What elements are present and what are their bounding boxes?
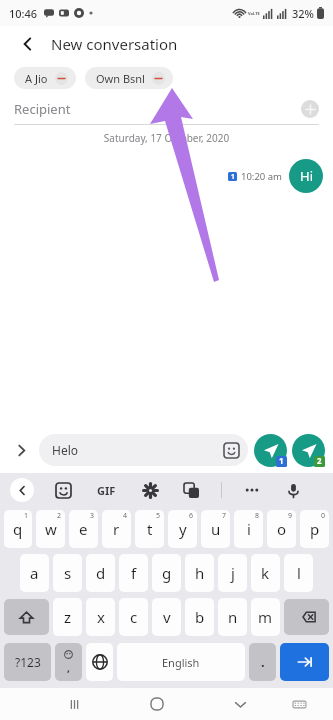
button[interactable]: More options <box>241 479 263 501</box>
staticText: . <box>261 653 265 671</box>
staticText: Recipient <box>14 100 301 118</box>
button[interactable]: Send with SIM 1 <box>254 434 287 467</box>
button[interactable]: h <box>185 554 214 592</box>
button[interactable]: Home <box>142 689 172 719</box>
staticText: j <box>231 563 235 583</box>
button[interactable]: e <box>69 510 98 548</box>
button[interactable]: s <box>53 554 82 592</box>
staticText: z <box>64 607 72 627</box>
button[interactable]: Translate <box>180 479 202 501</box>
button[interactable]: Hi <box>289 159 323 193</box>
button[interactable]: GIF <box>93 479 120 502</box>
button[interactable]: Stickers <box>223 442 240 459</box>
staticText: p <box>310 519 320 539</box>
button[interactable]: m <box>251 598 280 636</box>
button[interactable]: p <box>300 510 329 548</box>
button[interactable]: Back <box>14 30 42 58</box>
button[interactable]: Own Bsnl <box>85 67 173 89</box>
button[interactable]: Voice input <box>282 479 304 501</box>
staticText: English <box>162 655 200 670</box>
button[interactable]: A Jio <box>14 67 76 89</box>
staticText: 10:46 <box>9 6 38 21</box>
button[interactable]: f <box>119 554 148 592</box>
staticText: GIF <box>97 483 116 498</box>
button[interactable]: Period <box>249 643 276 681</box>
staticText: g <box>162 563 172 583</box>
staticText: Hi <box>300 167 313 185</box>
staticText: 1 <box>24 511 29 521</box>
button[interactable]: Helo <box>39 434 248 466</box>
button[interactable]: Change language <box>86 643 113 681</box>
staticText: v <box>163 607 171 627</box>
staticText: a <box>30 563 39 583</box>
staticText: 3 <box>90 511 95 521</box>
button[interactable]: Switch keyboard <box>284 689 314 719</box>
button[interactable]: Space <box>117 643 245 681</box>
button[interactable]: Send with SIM 2 <box>292 434 325 467</box>
button[interactable]: Settings <box>139 479 161 501</box>
button[interactable]: Emoji and comma <box>55 643 82 681</box>
button[interactable]: v <box>152 598 181 636</box>
button[interactable]: Backspace <box>284 599 329 635</box>
button[interactable]: w <box>36 510 65 548</box>
button[interactable]: o <box>267 510 296 548</box>
staticText: 8 <box>255 511 260 521</box>
button[interactable]: i <box>234 510 263 548</box>
button[interactable]: j <box>218 554 247 592</box>
button[interactable]: g <box>152 554 181 592</box>
staticText: 6 <box>189 511 194 521</box>
staticText: Saturday, 17 October, 2020 <box>0 131 333 145</box>
button[interactable]: u <box>201 510 230 548</box>
button[interactable]: r <box>102 510 131 548</box>
button[interactable]: b <box>185 598 214 636</box>
button[interactable]: x <box>86 598 115 636</box>
staticText: A Jio <box>25 71 48 86</box>
staticText: ?123 <box>15 654 41 670</box>
staticText: x <box>97 607 105 627</box>
button[interactable]: Symbols <box>4 643 51 681</box>
button[interactable]: Collapse toolbar <box>10 478 34 502</box>
staticText: k <box>261 563 270 583</box>
staticText: 2 <box>57 511 62 521</box>
button[interactable]: Expand options <box>8 437 34 463</box>
staticText: 4 <box>123 511 128 521</box>
staticText: f <box>131 563 137 583</box>
staticText: 10:20 am <box>241 170 282 183</box>
button[interactable]: Enter <box>280 643 329 681</box>
other: Remove Own Bsnl <box>152 72 165 85</box>
staticText: VoLTE <box>248 11 260 16</box>
staticText: 0 <box>321 511 326 521</box>
staticText: t <box>147 519 153 539</box>
button[interactable]: Add recipient <box>301 100 319 118</box>
staticText: , <box>67 661 70 675</box>
staticText: 1 <box>231 172 235 181</box>
button[interactable]: Shift <box>4 599 49 635</box>
button[interactable]: q <box>4 510 32 548</box>
other: Remove A Jio <box>55 72 68 85</box>
staticText: e <box>79 519 88 539</box>
button[interactable]: Recents <box>59 689 89 719</box>
staticText: 2 <box>317 456 322 467</box>
staticText: h <box>195 563 205 583</box>
button[interactable]: Stickers <box>52 479 74 501</box>
staticText: m <box>258 607 273 627</box>
staticText: y <box>179 519 187 539</box>
button[interactable]: n <box>218 598 247 636</box>
button[interactable]: k <box>251 554 280 592</box>
staticText: w <box>45 519 57 539</box>
button[interactable]: y <box>168 510 197 548</box>
button[interactable]: Hide keyboard <box>225 689 255 719</box>
button[interactable]: d <box>86 554 115 592</box>
button[interactable]: a <box>20 554 49 592</box>
button[interactable]: c <box>119 598 148 636</box>
button[interactable]: t <box>135 510 164 548</box>
staticText: u <box>211 519 221 539</box>
button[interactable]: l <box>284 554 313 592</box>
staticText: 7 <box>222 511 227 521</box>
staticText: Helo <box>52 442 223 458</box>
staticText: 32% <box>292 6 314 21</box>
staticText: 5 <box>156 511 161 521</box>
button[interactable]: z <box>53 598 82 636</box>
staticText: b <box>195 607 205 627</box>
staticText: l <box>297 563 301 583</box>
